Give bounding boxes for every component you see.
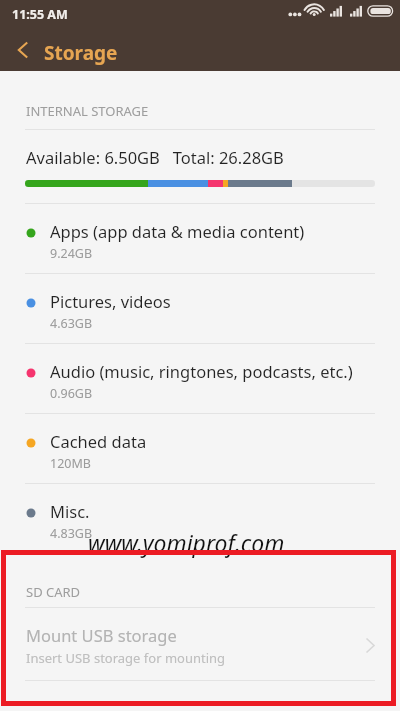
staticText: Storage <box>44 40 118 66</box>
staticText: www.yomiprof.com <box>88 527 285 558</box>
staticText: Cached data <box>50 430 147 452</box>
staticText: 0.96GB <box>50 385 93 402</box>
button[interactable]: Cached data <box>0 413 400 482</box>
button[interactable]: Audio (music, ringtones, podcasts, etc.) <box>0 343 400 412</box>
staticText: 11:55 AM <box>12 6 68 23</box>
staticText: Misc. <box>50 500 90 522</box>
button[interactable]: Misc. <box>0 483 400 552</box>
staticText: SD CARD <box>26 583 81 601</box>
staticText: Insert USB storage for mounting <box>26 649 226 667</box>
staticText: 4.63GB <box>50 315 93 332</box>
staticText: Available: 6.50GB Total: 26.28GB <box>26 146 284 168</box>
staticText: 120MB <box>50 455 91 472</box>
staticText: 9.24GB <box>50 245 93 262</box>
staticText: Apps (app data & media content) <box>50 220 305 242</box>
staticText: INTERNAL STORAGE <box>26 102 149 120</box>
staticText: Pictures, videos <box>50 290 171 312</box>
button[interactable]: Mount USB storage <box>0 607 400 680</box>
button[interactable]: Back <box>3 28 43 71</box>
staticText: 4.83GB <box>50 525 93 542</box>
button[interactable]: Pictures, videos <box>0 273 400 342</box>
button[interactable]: Apps (app data & media content) <box>0 203 400 272</box>
staticText: Audio (music, ringtones, podcasts, etc.) <box>50 360 353 382</box>
staticText: Mount USB storage <box>26 624 177 646</box>
